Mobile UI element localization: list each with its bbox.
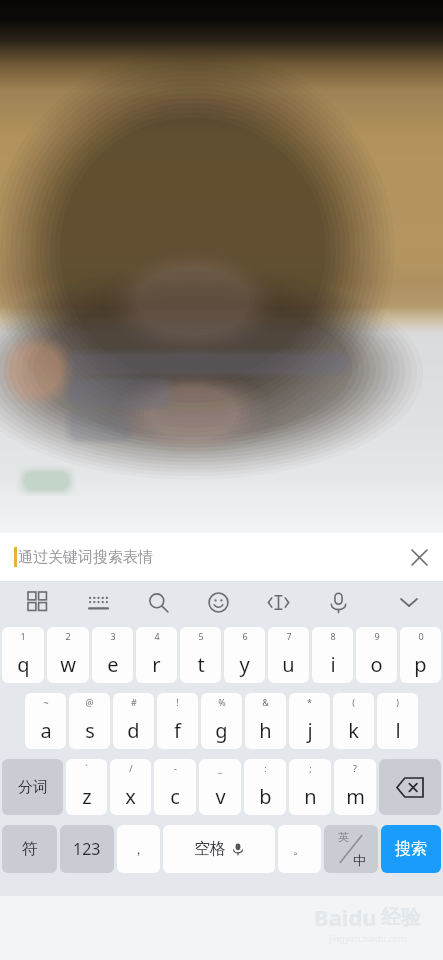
button[interactable]: 1 (2, 627, 44, 683)
staticText: ~ (43, 696, 49, 708)
button[interactable]: ) (377, 693, 418, 749)
button[interactable]: 2 (47, 627, 89, 683)
staticText: 2 (65, 630, 71, 642)
staticText: 123 (73, 838, 101, 860)
button[interactable]: 9 (356, 627, 397, 683)
button[interactable]: Clear (395, 533, 443, 581)
staticText: ! (176, 696, 179, 708)
button[interactable]: 6 (224, 627, 265, 683)
button[interactable]: 0 (400, 627, 441, 683)
staticText: @ (85, 696, 94, 708)
staticText: o (370, 651, 383, 678)
staticText: 1 (20, 630, 26, 642)
staticText: b (259, 783, 272, 810)
button[interactable]: Voice (308, 581, 368, 623)
button[interactable]: ~ (25, 693, 66, 749)
button[interactable]: ? (334, 759, 376, 815)
staticText: 7 (286, 630, 292, 642)
staticText: c (170, 783, 180, 810)
button[interactable]: 5 (180, 627, 221, 683)
button[interactable]: / (110, 759, 151, 815)
button[interactable]: & (245, 693, 286, 749)
button[interactable]: Switch English Chinese (324, 825, 378, 873)
staticText: 。 (293, 841, 306, 857)
button[interactable]: _ (199, 759, 241, 815)
staticText: ? (353, 762, 357, 774)
staticText: k (348, 717, 359, 744)
button[interactable]: Hide keyboard (383, 581, 435, 623)
staticText: % (218, 696, 226, 708)
button[interactable]: Backspace (379, 759, 441, 815)
staticText: p (414, 651, 427, 678)
button[interactable]: Apps (8, 581, 68, 623)
button[interactable]: ! (157, 693, 198, 749)
staticText: 英 (338, 830, 349, 844)
staticText: z (82, 783, 92, 810)
staticText: jingyan.baidu.com (329, 932, 407, 944)
button[interactable]: 分词 (2, 759, 63, 815)
staticText: n (304, 783, 317, 810)
button[interactable]: Emoji (188, 581, 248, 623)
button[interactable]: 123 (60, 825, 114, 873)
staticText: 8 (330, 630, 336, 642)
button[interactable]: # (113, 693, 154, 749)
staticText: / (129, 762, 133, 774)
staticText: q (17, 651, 30, 678)
staticText: 5 (198, 630, 204, 642)
staticText: & (262, 696, 269, 708)
staticText: ) (396, 696, 399, 708)
staticText: a (40, 717, 52, 744)
button[interactable]: ` (66, 759, 107, 815)
staticText: f (174, 717, 181, 744)
staticText: e (107, 651, 119, 678)
staticText: ， (132, 841, 145, 857)
staticText: 经验 (381, 905, 421, 930)
staticText: Baidu (314, 902, 377, 932)
staticText: j (307, 717, 313, 744)
button[interactable]: 。 (278, 825, 321, 873)
button[interactable]: % (201, 693, 242, 749)
button[interactable]: 4 (136, 627, 177, 683)
staticText: 4 (154, 630, 160, 642)
button[interactable]: 3 (92, 627, 133, 683)
staticText: v (215, 783, 226, 810)
staticText: 3 (110, 630, 116, 642)
staticText: g (215, 717, 228, 744)
staticText: ( (352, 696, 355, 708)
staticText: ` (85, 762, 88, 774)
button[interactable]: Code (248, 581, 308, 623)
staticText: x (125, 783, 136, 810)
button[interactable]: 符 (2, 825, 57, 873)
staticText: 符 (22, 839, 38, 859)
button[interactable]: : (244, 759, 286, 815)
staticText: ; (309, 762, 312, 774)
staticText: m (346, 783, 365, 810)
staticText: d (127, 717, 140, 744)
staticText: 6 (242, 630, 248, 642)
button[interactable]: ( (333, 693, 374, 749)
staticText: h (259, 717, 272, 744)
staticText: t (197, 651, 205, 678)
staticText: 中 (353, 852, 366, 868)
staticText: y (239, 651, 250, 678)
staticText: - (174, 762, 177, 774)
button[interactable]: @ (69, 693, 110, 749)
button[interactable]: Search (128, 581, 188, 623)
staticText: # (131, 696, 137, 708)
button[interactable]: Keyboard (68, 581, 128, 623)
staticText: 0 (418, 630, 424, 642)
button[interactable]: 7 (268, 627, 309, 683)
button[interactable]: ， (117, 825, 160, 873)
staticText: u (282, 651, 295, 678)
staticText: s (85, 717, 95, 744)
button[interactable]: 8 (312, 627, 353, 683)
staticText: r (152, 651, 161, 678)
staticText: 分词 (18, 778, 48, 797)
button[interactable]: * (289, 693, 330, 749)
button[interactable]: ; (289, 759, 331, 815)
staticText: 通过关键词搜索表情 (18, 548, 153, 567)
button[interactable]: - (154, 759, 196, 815)
button[interactable]: 搜索 (381, 825, 441, 873)
button[interactable]: 空格 (163, 825, 275, 873)
staticText: 9 (374, 630, 380, 642)
